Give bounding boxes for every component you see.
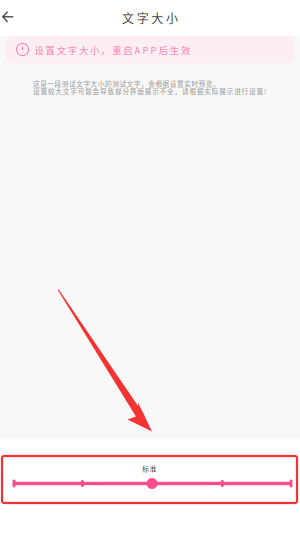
staticText: 标准 xyxy=(142,464,157,473)
staticText: 文字大小 xyxy=(122,9,178,27)
staticText: 设置较大文字可能会导致部分界面展示不全，请根据实际展示进行设置! xyxy=(33,86,266,96)
staticText: 设置文字大小，重启APP后生效 xyxy=(34,43,190,57)
staticText: 这是一段测试文字大小的测试文字，会根据设置实时预览。 xyxy=(33,79,220,88)
button[interactable]: Back xyxy=(0,3,22,31)
